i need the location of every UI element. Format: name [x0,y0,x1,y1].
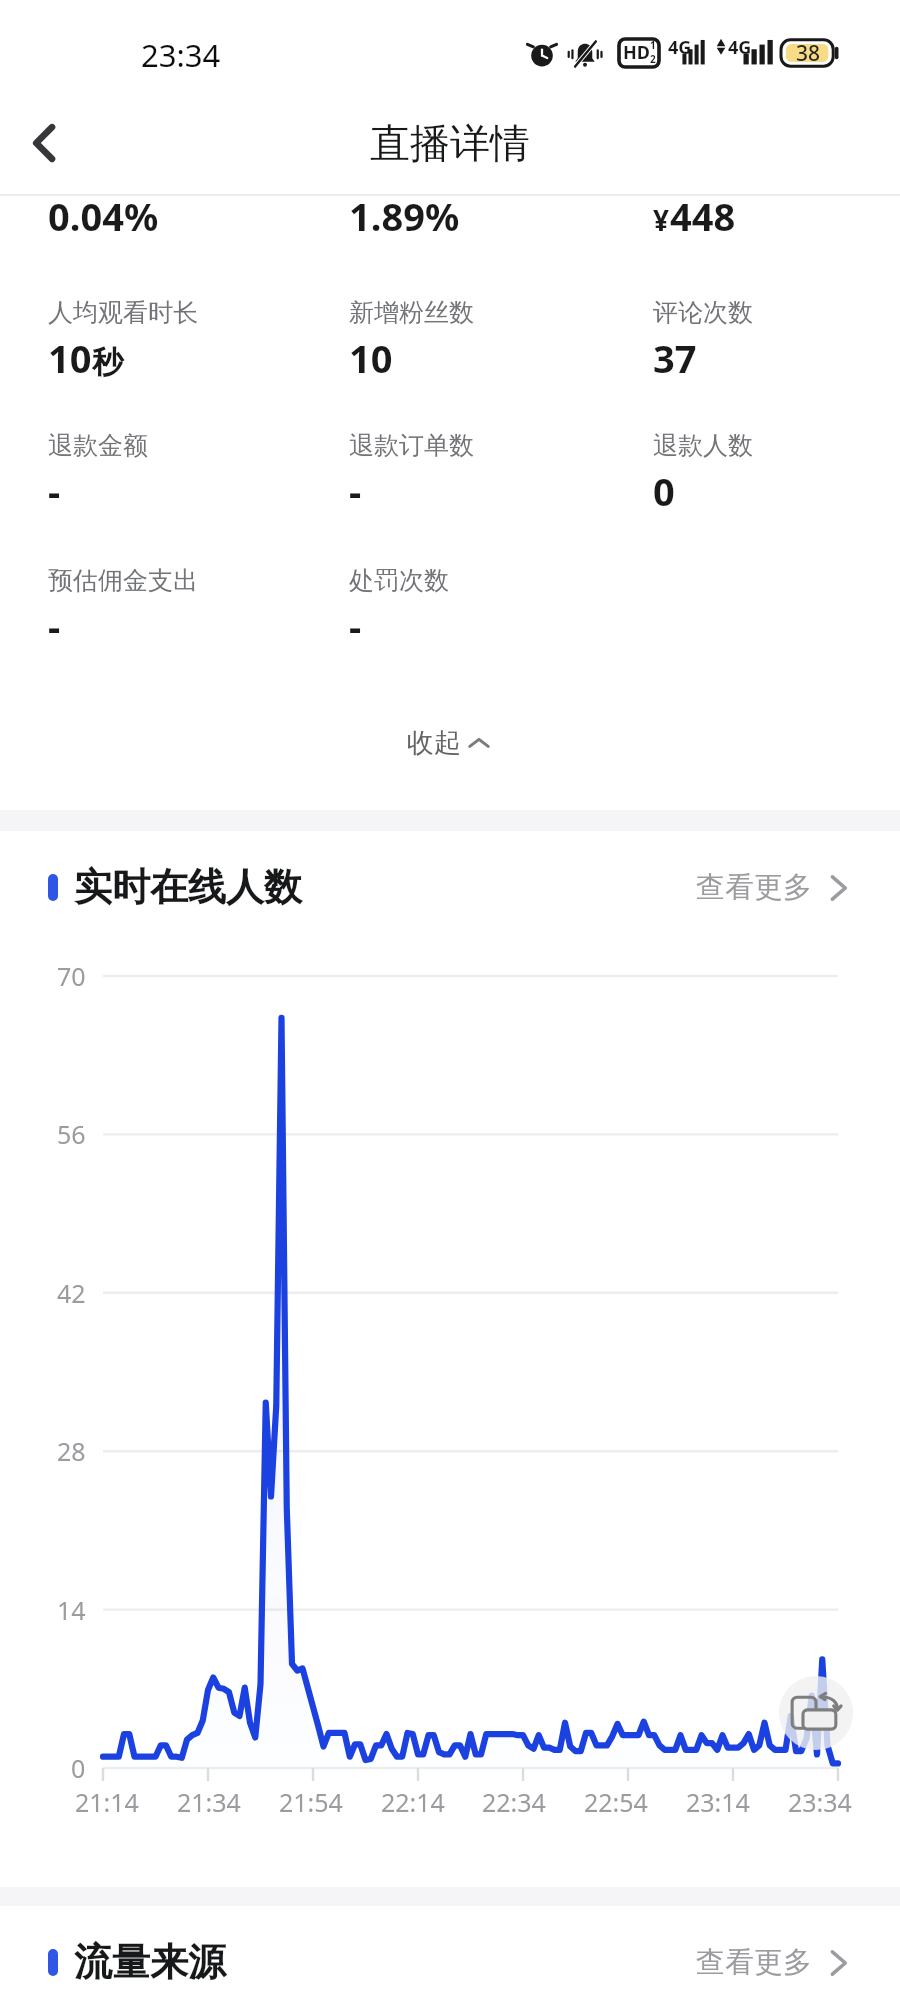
staticText: 21:34 [177,1785,241,1819]
staticText: 实时在线人数 [74,863,302,911]
staticText: 预估佣金支出 [48,565,198,596]
staticText: 448 [670,190,736,242]
staticText: 28 [57,1434,86,1468]
staticText: HD [623,40,650,65]
staticText: 处罚次数 [349,565,449,596]
staticText: 2 [650,52,656,66]
staticText: 0 [653,465,675,517]
button[interactable]: Back [14,112,76,174]
staticText: 收起 [407,726,461,760]
staticText: 4G [728,35,752,60]
staticText: 退款订单数 [349,430,474,461]
staticText: 评论次数 [653,297,753,328]
staticText: 秒 [92,343,123,382]
staticText: 直播详情 [370,118,530,168]
staticText: 退款金额 [48,430,148,461]
button[interactable]: 收起 [392,708,504,778]
staticText: 23:34 [788,1785,852,1819]
staticText: 1.89% [349,190,460,242]
staticText: 23:14 [686,1785,750,1819]
button[interactable]: Rotate screen [779,1676,853,1750]
staticText: 退款人数 [653,430,753,461]
staticText: 10 [349,332,393,384]
staticText: - [48,465,61,517]
staticText: 21:54 [279,1785,343,1819]
staticText: ¥ [653,201,670,239]
staticText: 14 [57,1593,86,1627]
staticText: 23:34 [141,34,221,76]
staticText: - [349,465,362,517]
staticText: - [48,600,61,652]
staticText: 4G [668,35,692,60]
button[interactable]: 查看更多 [696,1944,852,1981]
staticText: 0.04% [48,190,159,242]
staticText: 38 [796,39,821,68]
staticText: 22:14 [381,1785,445,1819]
staticText: 流量来源 [74,1938,226,1986]
staticText: 10 [48,332,92,384]
staticText: 人均观看时长 [48,297,198,328]
staticText: 新增粉丝数 [349,297,474,328]
staticText: 37 [653,332,697,384]
staticText: 查看更多 [696,1944,812,1981]
staticText: 42 [57,1276,86,1310]
staticText: - [349,600,362,652]
staticText: 22:34 [482,1785,546,1819]
staticText: 0 [71,1751,86,1785]
staticText: 56 [57,1117,86,1151]
staticText: 查看更多 [696,869,812,906]
staticText: 1 [650,38,656,52]
button[interactable]: 查看更多 [696,869,852,906]
staticText: 70 [57,959,86,993]
staticText: 22:54 [584,1785,648,1819]
staticText: 21:14 [75,1785,139,1819]
